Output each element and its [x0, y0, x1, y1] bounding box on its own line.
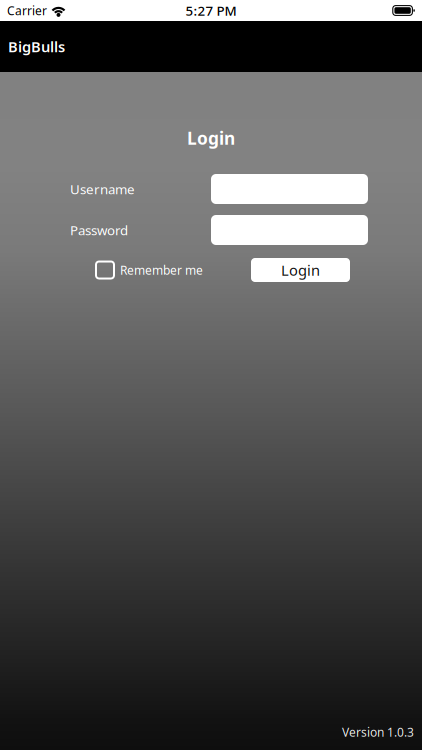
button[interactable]: Password — [211, 215, 368, 245]
staticText: Login — [281, 260, 320, 280]
staticText: Username — [70, 180, 135, 198]
button[interactable]: Remember me — [70, 258, 225, 282]
staticText: Remember me — [120, 262, 203, 278]
button[interactable]: Username — [211, 174, 368, 204]
staticText: Password — [70, 221, 128, 239]
staticText: 5:27 PM — [185, 2, 236, 19]
staticText: Carrier — [7, 2, 47, 18]
staticText: Version 1.0.3 — [342, 724, 414, 740]
button[interactable]: Login — [251, 258, 350, 282]
staticText: BigBulls — [8, 37, 65, 56]
staticText: Login — [187, 126, 235, 149]
